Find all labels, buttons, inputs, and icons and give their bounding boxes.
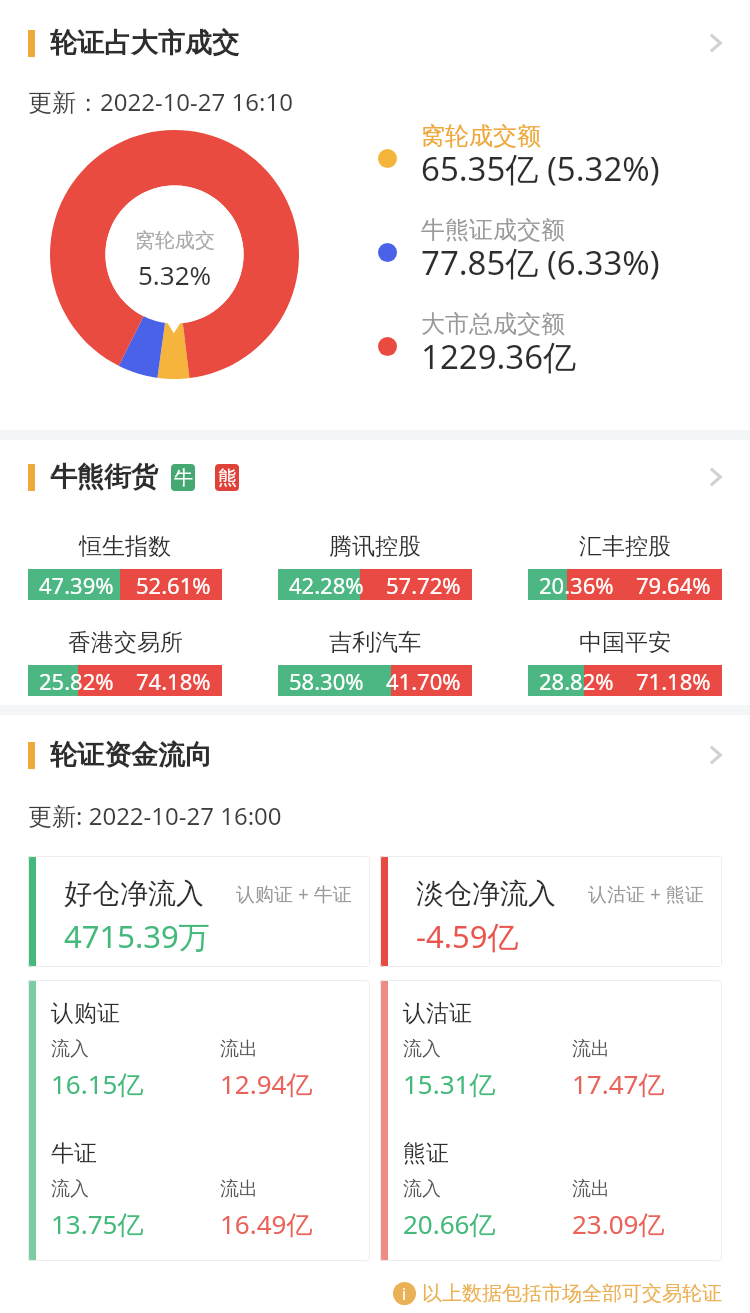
staticText: 52.61% [136,570,211,600]
button[interactable]: More [680,720,750,790]
button[interactable]: 认购证 [28,980,370,1261]
staticText: 17.47亿 [572,1066,665,1102]
staticText: 认沽证 + 熊证 [588,881,704,907]
button[interactable]: More [680,442,750,512]
staticText: 淡仓净流入 [416,876,556,911]
staticText: 12.94亿 [220,1066,313,1102]
staticText: 流入 [51,1037,89,1061]
button[interactable]: 吉利汽车 [278,628,472,696]
staticText: 流出 [220,1177,258,1201]
staticText: 熊 [218,466,237,490]
staticText: 15.31亿 [403,1066,496,1102]
button[interactable]: 窝轮成交额 [378,111,660,205]
staticText: 熊证 [403,1139,449,1168]
button[interactable]: 香港交易所 [28,628,222,696]
staticText: 79.64% [636,570,711,600]
staticText: 流出 [220,1037,258,1061]
staticText: 16.49亿 [220,1206,313,1242]
button[interactable]: 腾讯控股 [278,532,472,600]
staticText: 香港交易所 [68,628,183,657]
staticText: 腾讯控股 [329,532,421,561]
staticText: 16.15亿 [51,1066,144,1102]
staticText: 牛熊街货 [50,460,158,494]
button[interactable]: 好仓净流入 [28,856,370,967]
staticText: 65.35亿 (5.32%) [421,146,660,191]
staticText: 74.18% [136,666,211,696]
staticText: 流入 [403,1177,441,1201]
staticText: 流入 [51,1177,89,1201]
staticText: 更新: 2022-10-27 16:00 [28,799,282,832]
staticText: 4715.39万 [64,915,210,957]
button[interactable]: 认沽证 [380,980,722,1261]
staticText: 更新：2022-10-27 16:10 [28,85,293,118]
staticText: 轮证占大市成交 [50,26,239,60]
staticText: -4.59亿 [416,915,519,957]
staticText: 认购证 + 牛证 [236,881,352,907]
staticText: 13.75亿 [51,1206,144,1242]
staticText: 20.66亿 [403,1206,496,1242]
staticText: 认购证 [51,999,120,1028]
staticText: 28.82% [539,666,614,696]
staticText: 71.18% [636,666,711,696]
staticText: 41.70% [386,666,461,696]
staticText: 1229.36亿 [421,334,577,379]
staticText: 5.32% [138,257,212,292]
staticText: 恒生指数 [79,532,171,561]
staticText: 58.30% [289,666,364,696]
button[interactable]: 淡仓净流入 [380,856,722,967]
staticText: 好仓净流入 [64,876,204,911]
staticText: 25.82% [39,666,114,696]
staticText: i [402,1283,407,1305]
staticText: 牛证 [51,1139,97,1168]
button[interactable]: 中国平安 [528,628,722,696]
staticText: 窝轮成交 [135,228,215,253]
staticText: 汇丰控股 [579,532,671,561]
staticText: 20.36% [539,570,614,600]
staticText: 57.72% [386,570,461,600]
staticText: 认沽证 [403,999,472,1028]
button[interactable]: 大市总成交额 [378,299,577,393]
staticText: 23.09亿 [572,1206,665,1242]
staticText: 牛 [174,466,193,490]
staticText: 47.39% [39,570,114,600]
button[interactable]: 牛熊证成交额 [378,205,660,299]
button[interactable]: 恒生指数 [28,532,222,600]
staticText: 轮证资金流向 [50,738,212,772]
staticText: 窝轮成交额 [421,121,541,151]
staticText: 中国平安 [579,628,671,657]
staticText: 流入 [403,1037,441,1061]
button[interactable]: 牛熊街货 [0,440,750,514]
staticText: 以上数据包括市场全部可交易轮证 [422,1281,722,1306]
staticText: 牛熊证成交额 [421,215,565,245]
staticText: 大市总成交额 [421,309,565,339]
staticText: 流出 [572,1177,610,1201]
button[interactable]: More [680,8,750,78]
staticText: 42.28% [289,570,364,600]
staticText: 77.85亿 (6.33%) [421,240,660,285]
staticText: 流出 [572,1037,610,1061]
staticText: 吉利汽车 [329,628,421,657]
button[interactable]: 轮证资金流向 [0,715,750,795]
button[interactable]: 轮证占大市成交 [0,0,750,86]
button[interactable]: 汇丰控股 [528,532,722,600]
